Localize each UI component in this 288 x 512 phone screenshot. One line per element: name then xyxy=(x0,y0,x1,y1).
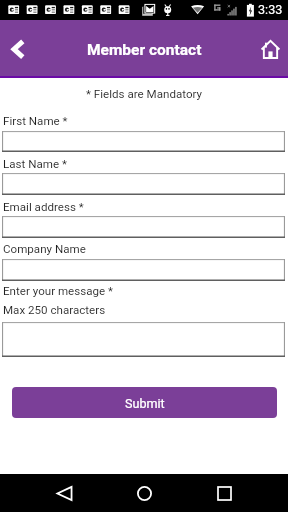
button[interactable] xyxy=(2,216,285,238)
staticText: 3:33 xyxy=(258,2,283,17)
button[interactable]: Back xyxy=(0,30,35,68)
staticText: Company Name xyxy=(3,242,86,256)
button[interactable] xyxy=(2,322,285,357)
button[interactable] xyxy=(2,131,285,152)
button[interactable]: Submit xyxy=(12,387,277,418)
staticText: Email address * xyxy=(3,200,84,214)
button[interactable]: Home xyxy=(125,474,163,512)
staticText: Enter your message * xyxy=(3,284,114,298)
staticText: * Fields are Mandatory xyxy=(0,87,288,101)
button[interactable] xyxy=(2,259,285,281)
staticText: Member contact xyxy=(87,41,202,59)
staticText: Submit xyxy=(125,396,165,411)
button[interactable]: Recents xyxy=(205,474,243,512)
staticText: Max 250 characters xyxy=(3,303,106,317)
button[interactable]: Back xyxy=(45,474,83,512)
staticText: First Name * xyxy=(3,114,68,128)
button[interactable] xyxy=(2,173,285,195)
button[interactable]: Home xyxy=(253,32,287,66)
staticText: Last Name * xyxy=(3,157,67,171)
